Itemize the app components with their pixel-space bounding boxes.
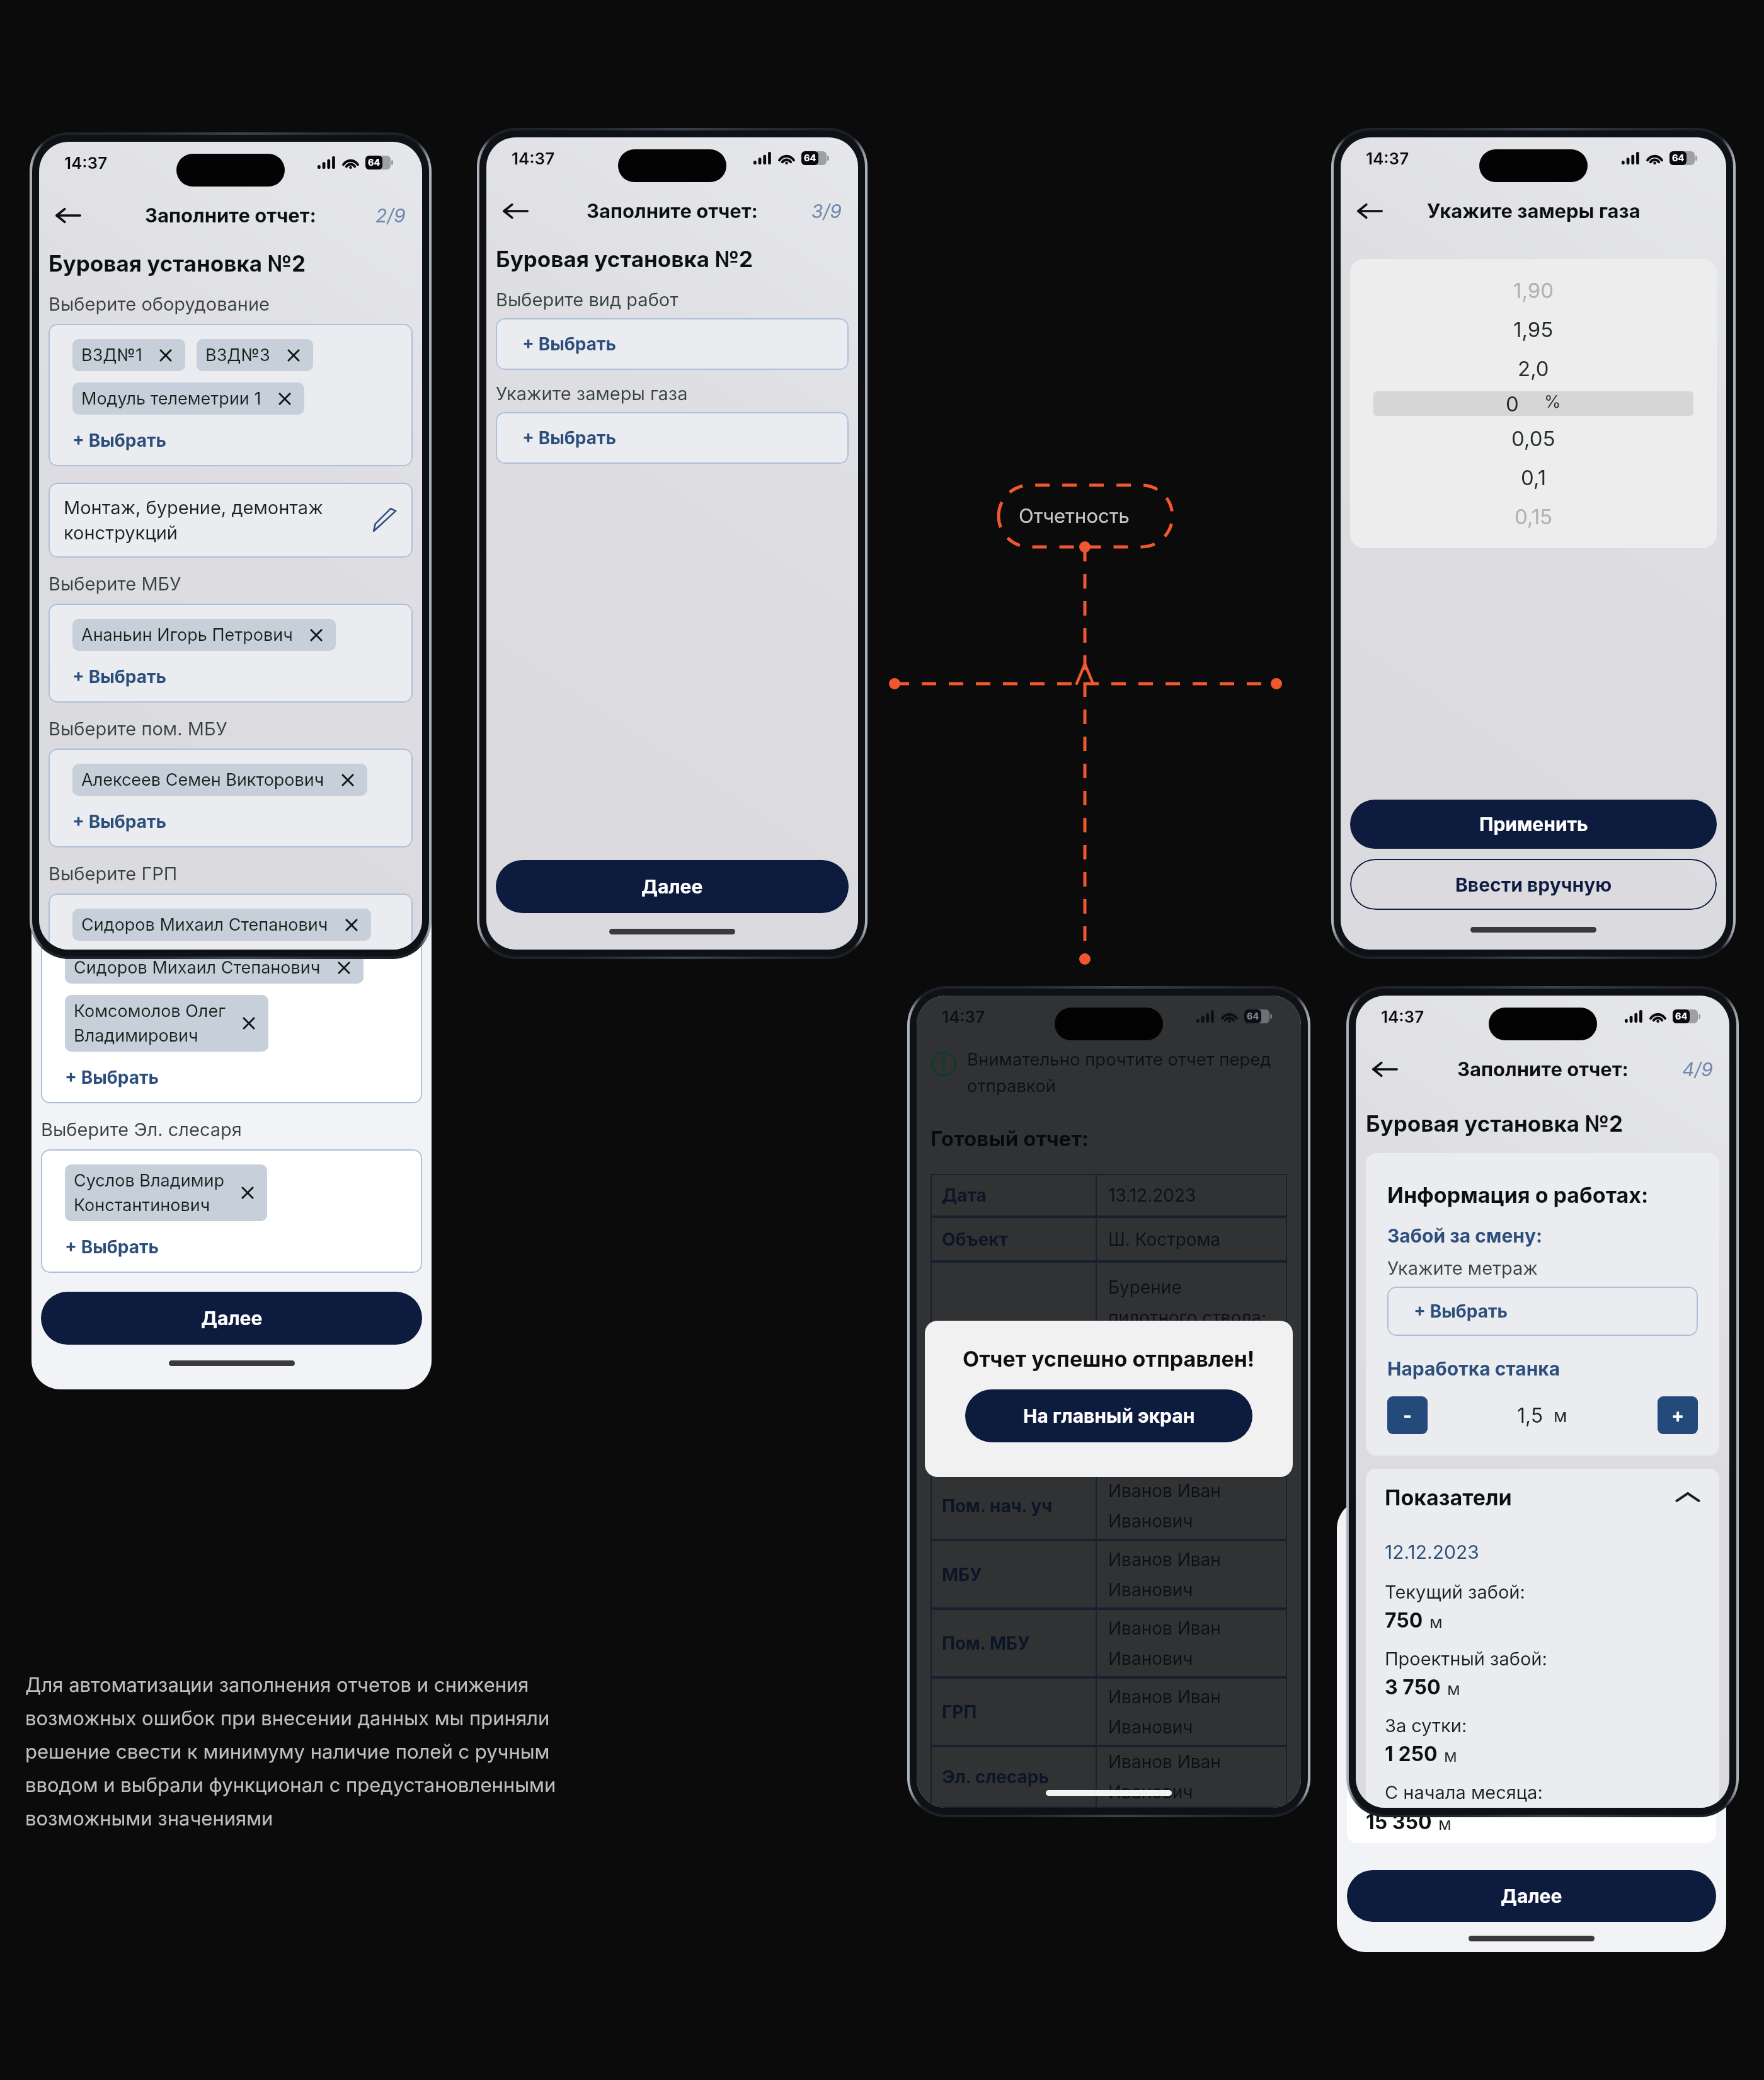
staticText: На главный экран [1023, 1405, 1195, 1427]
other: Удалить [160, 350, 171, 361]
button[interactable]: Далее [496, 860, 849, 913]
staticText: 750 [1385, 1608, 1423, 1633]
staticText: м [1411, 1613, 1424, 1634]
button[interactable]: Назад [53, 200, 83, 231]
other: Назад [1372, 1057, 1397, 1082]
button[interactable]: + Выбрать [65, 1236, 159, 1258]
other: Назад [55, 203, 81, 228]
staticText: Заполните отчет: [1457, 1057, 1629, 1081]
staticText: 12.12.2023 [1366, 1542, 1460, 1565]
button[interactable]: + Выбрать [72, 811, 167, 832]
button[interactable]: + Выбрать [496, 318, 849, 370]
button[interactable]: Ввести вручную [1350, 859, 1717, 910]
button[interactable]: 0,05 [1511, 426, 1555, 451]
button[interactable]: Уменьшить [1387, 1396, 1428, 1434]
staticText: Для автоматизации заполнения отчетов и с… [25, 1673, 556, 1830]
button[interactable]: 2,0 [1518, 356, 1549, 381]
staticText: 64 [368, 157, 381, 168]
button[interactable]: Сидоров Михаил Степанович [65, 951, 364, 984]
button[interactable]: Далее [1347, 1870, 1716, 1922]
button[interactable]: Ананьин Игорь Петрович [72, 619, 336, 651]
button[interactable]: 1,95 [1513, 317, 1554, 342]
staticText: Буровая установка №2 [1366, 1110, 1624, 1137]
staticText: Выберите пом. МБУ [49, 718, 227, 740]
staticText: Модуль телеметрии 1 [81, 388, 261, 409]
button[interactable]: Сидоров Михаил Степанович [72, 909, 371, 941]
staticText: + Выбрать [65, 1236, 159, 1258]
other: Удалить [346, 919, 357, 931]
staticText: 12.12.2023 [1385, 1541, 1479, 1563]
button[interactable]: + Выбрать [72, 666, 167, 687]
button[interactable]: ВЗД№3 [197, 339, 313, 371]
staticText: 750 [1366, 1609, 1404, 1634]
button[interactable]: Назад [500, 196, 530, 226]
staticText: Далее [1501, 1885, 1562, 1907]
staticText: 3 750 [1385, 1675, 1441, 1699]
button[interactable]: + Выбрать [65, 854, 159, 875]
staticText: Пом. МБУ [942, 1633, 1030, 1654]
button[interactable]: Показатели [1366, 1500, 1697, 1512]
staticText: + Выбрать [1414, 1301, 1508, 1322]
button[interactable]: 1,90 [1513, 278, 1554, 303]
staticText: Забой за смену: [1387, 1224, 1543, 1247]
staticText: 2/9 [375, 204, 406, 227]
staticText: Иванов Иван Иванович [1108, 1549, 1221, 1600]
staticText: Буровая установка №2 [496, 246, 753, 272]
staticText: Иванов Иван Иванович [1108, 1686, 1221, 1738]
button[interactable]: + Выбрать [65, 1067, 159, 1088]
staticText: + Выбрать [72, 430, 167, 451]
button[interactable]: + Выбрать [1387, 1287, 1698, 1336]
staticText: Проектный забой: [1385, 1648, 1547, 1670]
staticText: Информация о работах: [1387, 1182, 1649, 1208]
staticText: 14:37 [512, 149, 555, 168]
button[interactable]: + Выбрать [72, 430, 167, 451]
staticText: + Выбрать [72, 666, 167, 687]
button[interactable]: + Выбрать [496, 412, 849, 464]
button[interactable]: ВЗД№1 [72, 339, 185, 371]
staticText: С начала месяца: [1366, 1783, 1524, 1805]
button[interactable]: На главный экран [965, 1389, 1252, 1442]
button[interactable]: Монтаж, бурение, демонтаж конструкций [49, 483, 413, 558]
other: Удалить [243, 1018, 255, 1029]
other: Назад [503, 198, 528, 224]
button[interactable]: Комсомолов Олег Владимирович [65, 995, 268, 1052]
staticText: Заполните отчет: [145, 204, 316, 227]
staticText: 14:37 [64, 153, 108, 173]
other: Удалить [242, 1187, 253, 1198]
staticText: Комсомолов Олег Владимирович [74, 1001, 226, 1046]
staticText: Иванов Иван Иванович [1108, 1751, 1221, 1803]
other: Удалить [338, 962, 350, 974]
staticText: 1,5 [1517, 1403, 1543, 1428]
button[interactable]: Алексеев Семен Викторович [65, 813, 360, 839]
button[interactable]: 0,15 [1515, 504, 1553, 529]
staticText: 14:37 [1381, 1007, 1424, 1026]
staticText: Далее [641, 875, 703, 898]
button[interactable]: 0,1 [1521, 465, 1547, 490]
staticText: м [1438, 1813, 1452, 1834]
button[interactable]: Модуль телеметрии 1 [72, 382, 304, 415]
button[interactable]: Назад [1370, 1054, 1400, 1084]
button[interactable]: 0 [1373, 391, 1693, 416]
other: Редактировать [371, 507, 398, 534]
staticText: МБУ [942, 1564, 982, 1585]
staticText: 13.12.2023 [1108, 1185, 1196, 1206]
button[interactable]: Увеличить [1658, 1396, 1698, 1434]
staticText: - [1403, 1404, 1412, 1427]
staticText: Далее [201, 1307, 263, 1330]
staticText: 14:37 [1366, 149, 1409, 168]
staticText: 1 250 [1366, 1743, 1419, 1767]
staticText: м [1429, 1612, 1443, 1633]
staticText: м [1447, 1679, 1460, 1699]
button[interactable]: Алексеев Семен Викторович [72, 764, 367, 796]
button[interactable]: Суслов Владимир Константинович [65, 1164, 267, 1221]
button[interactable]: Назад [1354, 196, 1385, 226]
staticText: За сутки: [1385, 1715, 1467, 1737]
button[interactable]: Применить [1350, 800, 1717, 849]
button[interactable]: Показатели [1385, 1485, 1700, 1510]
staticText: м [1444, 1745, 1457, 1766]
other: Удалить [288, 350, 299, 361]
staticText: Ш. Кострома [1108, 1229, 1220, 1250]
staticText: Выберите вид работ [496, 289, 679, 311]
button[interactable]: Далее [41, 1292, 422, 1345]
staticText: Показатели [1385, 1485, 1675, 1510]
